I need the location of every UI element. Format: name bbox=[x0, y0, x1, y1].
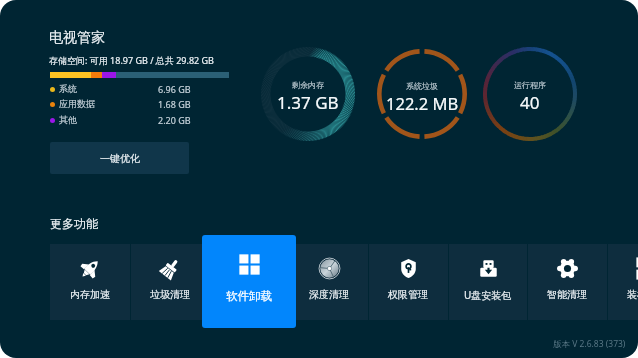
button[interactable]: 深度清理 bbox=[289, 244, 369, 320]
other: 垃圾清理 bbox=[159, 257, 182, 280]
staticText: 40 bbox=[520, 91, 540, 114]
button[interactable]: 软件卸载 bbox=[202, 235, 296, 328]
staticText: 智能清理 bbox=[547, 288, 587, 301]
staticText: U盘安装包 bbox=[464, 288, 512, 302]
staticText: 剩余内存 bbox=[292, 80, 324, 90]
other: 智能清理 bbox=[556, 257, 579, 280]
other: 内存加速 bbox=[79, 257, 102, 280]
other: 软件卸载 bbox=[239, 254, 260, 275]
staticText: 软件卸载 bbox=[226, 289, 272, 303]
staticText: 电视管家 bbox=[49, 29, 105, 47]
button[interactable]: 垃圾清理 bbox=[130, 244, 210, 320]
button[interactable]: 智能清理 bbox=[527, 244, 607, 320]
button[interactable]: U盘安装包 bbox=[448, 244, 528, 320]
staticText: 垃圾清理 bbox=[150, 288, 190, 301]
other: 装机必备 bbox=[636, 257, 638, 280]
staticText: 2.20 GB bbox=[158, 114, 191, 126]
staticText: 存储空间: 可用 18.97 GB / 总共 29.82 GB bbox=[49, 54, 214, 66]
staticText: 权限管理 bbox=[388, 288, 428, 301]
other: 权限管理 bbox=[397, 257, 420, 280]
button[interactable]: 装机必备 bbox=[607, 244, 638, 320]
staticText: 更多功能 bbox=[50, 216, 98, 231]
staticText: 其他 bbox=[59, 114, 77, 125]
staticText: 122.2 MB bbox=[386, 92, 459, 114]
staticText: 1.37 GB bbox=[277, 91, 339, 114]
staticText: 一键优化 bbox=[100, 152, 140, 165]
other: 深度清理 bbox=[318, 257, 341, 280]
button[interactable]: 权限管理 bbox=[368, 244, 448, 320]
button[interactable] bbox=[209, 244, 289, 320]
staticText: 深度清理 bbox=[309, 288, 349, 301]
staticText: 应用数据 bbox=[59, 98, 95, 109]
other: U盘安装包 bbox=[477, 257, 500, 280]
staticText: 6.96 GB bbox=[158, 83, 191, 95]
staticText: 运行程序 bbox=[514, 80, 546, 90]
staticText: 1.68 GB bbox=[158, 98, 191, 110]
button[interactable]: 一键优化 bbox=[50, 142, 189, 174]
staticText: 内存加速 bbox=[70, 288, 110, 301]
button[interactable]: 内存加速 bbox=[50, 244, 130, 320]
staticText: 系统垃圾 bbox=[406, 81, 438, 91]
staticText: 系统 bbox=[59, 83, 77, 94]
staticText: 版本 V 2.6.83 (373) bbox=[553, 338, 626, 350]
staticText: 装机必备 bbox=[627, 288, 638, 301]
